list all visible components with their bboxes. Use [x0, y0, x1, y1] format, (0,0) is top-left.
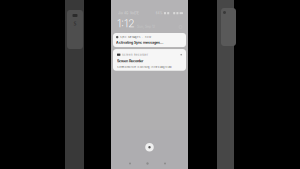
staticText: S [73, 20, 76, 27]
staticText: Screen Recorder is working in the backgr… [117, 66, 172, 69]
button[interactable]: Sync Messages · now [113, 33, 186, 47]
staticText: 1:12 [117, 17, 135, 30]
staticText: Screen Recorder [117, 59, 143, 63]
staticText: Sun, Sep 12 [137, 24, 155, 28]
staticText: Screen Recorder [122, 53, 148, 56]
button[interactable]: Home [146, 162, 149, 165]
staticText: 64% [156, 11, 163, 15]
button[interactable]: Back [129, 162, 131, 164]
button[interactable]: Screen Recorder [113, 49, 186, 71]
button[interactable]: Unlock [145, 143, 154, 151]
button[interactable]: Recents [164, 162, 166, 164]
staticText: Sync Messages · now [120, 35, 151, 39]
staticText: Jio 4G VoLTE [118, 11, 139, 15]
staticText: Activating Sync messages… [116, 40, 163, 45]
